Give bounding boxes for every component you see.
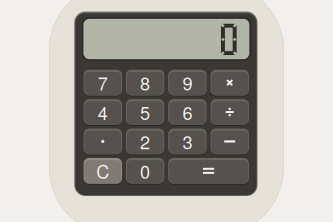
staticText: 4 <box>98 99 108 125</box>
button[interactable]: Minus <box>0 0 333 222</box>
button[interactable]: 0 <box>0 0 333 222</box>
staticText: 7 <box>98 70 108 96</box>
staticText: 3 <box>182 128 192 154</box>
staticText: 2 <box>140 128 150 154</box>
button[interactable]: 3 <box>0 0 333 222</box>
button[interactable]: 4 <box>0 0 333 222</box>
button[interactable]: 8 <box>0 0 333 222</box>
button[interactable]: 6 <box>0 0 333 222</box>
button[interactable]: Decimal point <box>0 0 333 222</box>
staticText: C <box>96 158 109 184</box>
button[interactable]: 2 <box>0 0 333 222</box>
button[interactable]: Divide <box>0 0 333 222</box>
button[interactable]: 9 <box>0 0 333 222</box>
staticText: 9 <box>182 70 192 96</box>
button[interactable]: 5 <box>0 0 333 222</box>
button[interactable]: Equals <box>0 0 333 222</box>
staticText: 0 <box>140 158 150 184</box>
staticText: 6 <box>182 99 192 125</box>
staticText: 5 <box>140 99 150 125</box>
button[interactable]: 7 <box>0 0 333 222</box>
button[interactable]: C <box>0 0 333 222</box>
staticText: 8 <box>140 70 150 96</box>
button[interactable]: Multiply <box>0 0 333 222</box>
